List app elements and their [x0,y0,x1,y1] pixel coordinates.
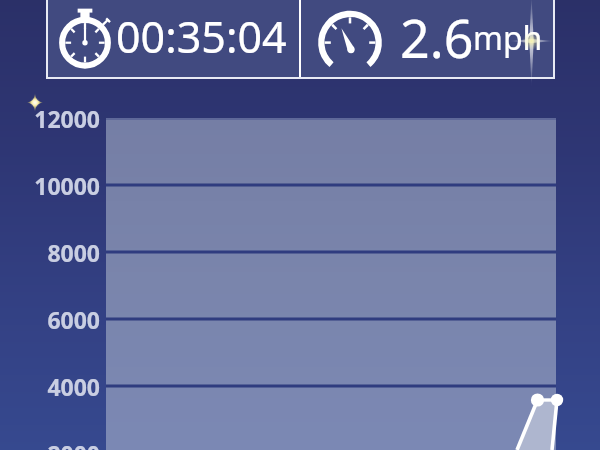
staticText: mph [473,16,543,60]
staticText: 12000 [0,103,100,134]
staticText: 2.6 [400,2,474,73]
staticText: 10000 [0,170,100,201]
staticText: 00:35:04 [116,7,287,66]
staticText: 6000 [0,304,100,335]
staticText: 4000 [0,371,100,402]
other: Current speed [315,9,385,79]
staticText: 2000 [0,438,100,450]
button[interactable]: Elapsed time [48,0,300,77]
staticText: 8000 [0,237,100,268]
other: Elapsed time [53,4,117,68]
button[interactable]: Current speed [301,0,553,77]
